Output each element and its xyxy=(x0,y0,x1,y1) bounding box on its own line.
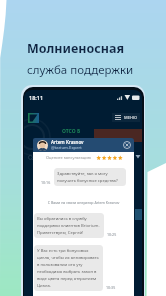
staticText: Здравствуйте, как я могу получить бонусн… xyxy=(57,171,123,183)
staticText: У Вас есть три бонусовых цикла, чтобы их… xyxy=(37,248,100,288)
staticText: Вы обратились в службу поддержки клиенто… xyxy=(37,216,101,235)
staticText: Молниеносная xyxy=(27,40,124,57)
button[interactable]: Вы обратились в службу поддержки клиенто… xyxy=(37,216,101,235)
button[interactable]: У Вас есть три бонусовых цикла, чтобы их… xyxy=(37,248,100,288)
button[interactable]: Здравствуйте, как я могу получить бонусн… xyxy=(57,171,123,183)
button[interactable]: Close xyxy=(123,141,131,149)
staticText: служба поддержки xyxy=(27,62,134,78)
staticText: 10:16 xyxy=(41,180,51,185)
staticText: Artem Krasnov xyxy=(51,139,84,145)
staticText: С Вами на связи оператор Artem Krasnov xyxy=(33,200,134,205)
staticText: Оцените консультацию xyxy=(46,155,91,160)
button[interactable]: Оцените консультацию xyxy=(46,152,123,163)
button[interactable]: Artem Krasnov xyxy=(33,138,134,152)
staticText: МЕНЮ xyxy=(124,115,137,120)
staticText: ОТСО Б xyxy=(62,128,81,135)
staticText: @tarium.Expert xyxy=(51,145,82,151)
staticText: 10:35 xyxy=(106,285,116,290)
staticText: 10:25 xyxy=(107,232,117,237)
button[interactable]: Logo xyxy=(28,113,39,123)
staticText: 18:11 xyxy=(29,94,44,101)
button[interactable]: Menu xyxy=(115,113,137,122)
